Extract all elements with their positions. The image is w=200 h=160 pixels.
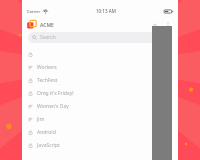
button[interactable]: Jim [22, 113, 178, 126]
button[interactable] [22, 48, 178, 61]
button[interactable]: Women's Day [22, 100, 178, 113]
staticText: Workers [37, 64, 57, 71]
button[interactable]: Android [22, 126, 178, 139]
button[interactable]: TechFest [22, 74, 178, 87]
button[interactable]: Notifications [149, 20, 160, 31]
staticText: Omg it's Friday! [37, 90, 74, 97]
staticText: Jim [37, 116, 45, 123]
staticText: Search [40, 34, 56, 41]
staticText: JavaScript [37, 142, 60, 149]
staticText: Women's Day [37, 103, 69, 110]
staticText: TechFest [37, 77, 58, 84]
button[interactable]: Workers [22, 61, 178, 74]
staticText: 10:13 AM [96, 8, 116, 14]
staticText: ACME [40, 22, 54, 29]
staticText: Carrier [27, 9, 41, 14]
button[interactable]: ACME logo [27, 20, 37, 30]
button[interactable]: JavaScript [22, 139, 178, 152]
staticText: Android [37, 129, 56, 136]
button[interactable]: Search [28, 32, 172, 43]
button[interactable]: More options [162, 20, 173, 31]
button[interactable]: Omg it's Friday! [22, 87, 178, 100]
